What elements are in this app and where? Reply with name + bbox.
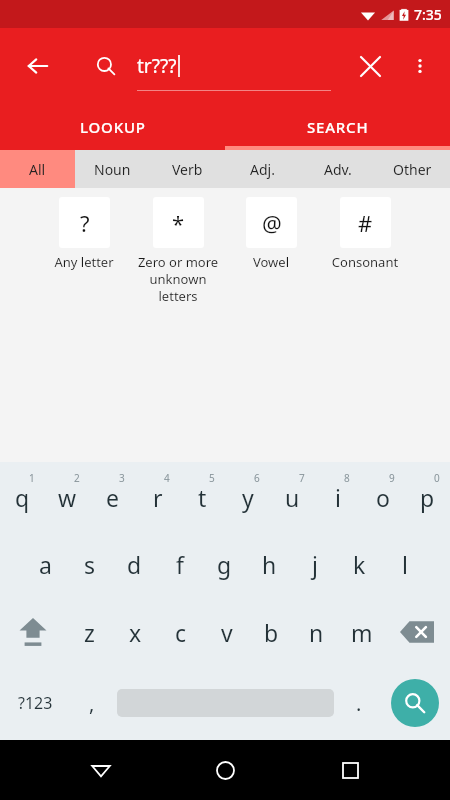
staticText: p <box>420 482 435 513</box>
staticText: Vowel <box>228 253 314 271</box>
button[interactable]: z <box>66 598 112 666</box>
staticText: z <box>84 617 95 648</box>
button[interactable]: , <box>74 678 110 728</box>
button[interactable]: Back <box>18 46 58 86</box>
staticText: 8 <box>344 471 350 485</box>
button[interactable]: 0 <box>405 462 450 530</box>
button[interactable]: 9 <box>360 462 405 530</box>
staticText: Adj. <box>250 160 275 179</box>
button[interactable]: 6 <box>225 462 270 530</box>
staticText: t <box>198 482 207 513</box>
staticText: g <box>217 549 232 580</box>
button[interactable]: g <box>202 530 247 598</box>
staticText: 1 <box>29 471 35 485</box>
button[interactable]: * <box>129 197 227 305</box>
staticText: 3 <box>119 471 125 485</box>
staticText: Verb <box>172 160 203 179</box>
button[interactable]: LOOKUP <box>0 103 225 150</box>
staticText: i <box>335 482 341 513</box>
staticText: Any letter <box>41 253 127 271</box>
button[interactable]: Home <box>201 746 249 794</box>
staticText: * <box>172 208 185 238</box>
button[interactable]: SEARCH <box>225 103 450 150</box>
staticText: Zero or more unknown letters <box>135 253 221 305</box>
staticText: Other <box>393 160 432 179</box>
button[interactable]: More options <box>400 46 440 86</box>
staticText: @ <box>262 208 282 238</box>
button[interactable]: Adj. <box>225 150 300 188</box>
button[interactable]: @ <box>222 197 320 271</box>
button[interactable]: Clear <box>350 46 390 86</box>
staticText: a <box>39 549 52 580</box>
button[interactable]: 2 <box>45 462 90 530</box>
button[interactable]: f <box>157 530 202 598</box>
button[interactable]: a <box>23 530 67 598</box>
staticText: , <box>89 690 95 717</box>
button[interactable]: # <box>316 197 414 271</box>
button[interactable]: Other <box>375 150 450 188</box>
staticText: # <box>358 208 373 238</box>
button[interactable]: 4 <box>135 462 180 530</box>
staticText: f <box>176 549 184 580</box>
staticText: e <box>106 482 119 513</box>
staticText: q <box>15 482 30 513</box>
staticText: All <box>29 160 46 179</box>
button[interactable]: 1 <box>0 462 45 530</box>
button[interactable]: 7 <box>270 462 315 530</box>
button[interactable]: 8 <box>315 462 360 530</box>
staticText: v <box>221 617 233 648</box>
staticText: 6 <box>254 471 260 485</box>
button[interactable]: Backspace <box>384 598 450 666</box>
button[interactable]: Recent apps <box>326 746 374 794</box>
staticText: Noun <box>94 160 131 179</box>
button[interactable]: Back <box>77 746 125 794</box>
button[interactable]: Noun <box>75 150 150 188</box>
button[interactable]: 3 <box>90 462 135 530</box>
button[interactable]: x <box>112 598 158 666</box>
button[interactable]: Shift <box>0 598 66 666</box>
button[interactable]: n <box>294 598 339 666</box>
staticText: u <box>285 482 300 513</box>
staticText: SEARCH <box>307 117 369 137</box>
staticText: w <box>58 482 77 513</box>
button[interactable]: c <box>158 598 204 666</box>
staticText: ? <box>80 208 90 238</box>
staticText: n <box>309 617 324 648</box>
button[interactable]: s <box>67 530 112 598</box>
button[interactable]: b <box>249 598 294 666</box>
staticText: o <box>376 482 390 513</box>
staticText: r <box>153 482 163 513</box>
staticText: 0 <box>434 471 440 485</box>
button[interactable]: l <box>382 530 427 598</box>
button[interactable]: All <box>0 150 75 188</box>
staticText: 9 <box>389 471 395 485</box>
staticText: l <box>402 549 408 580</box>
button[interactable]: m <box>339 598 384 666</box>
button[interactable]: d <box>112 530 157 598</box>
button[interactable]: . <box>342 678 376 728</box>
staticText: 2 <box>74 471 80 485</box>
staticText: LOOKUP <box>80 117 146 137</box>
button[interactable]: 5 <box>180 462 225 530</box>
button[interactable]: h <box>247 530 292 598</box>
staticText: ?123 <box>18 692 53 714</box>
button[interactable]: v <box>204 598 249 666</box>
staticText: 5 <box>209 471 215 485</box>
button[interactable]: j <box>292 530 337 598</box>
staticText: y <box>242 482 254 513</box>
staticText: h <box>262 549 277 580</box>
staticText: 4 <box>164 471 170 485</box>
button[interactable]: ? <box>35 197 133 271</box>
button[interactable]: Search <box>391 679 439 727</box>
button[interactable]: Adv. <box>300 150 375 188</box>
staticText: . <box>356 690 362 717</box>
staticText: j <box>312 549 318 580</box>
staticText: 7:35 <box>414 5 442 24</box>
staticText: Consonant <box>322 253 408 271</box>
button[interactable]: ?123 <box>4 678 66 728</box>
button[interactable]: k <box>337 530 382 598</box>
button[interactable]: Verb <box>150 150 225 188</box>
staticText: s <box>84 549 96 580</box>
staticText: d <box>127 549 142 580</box>
